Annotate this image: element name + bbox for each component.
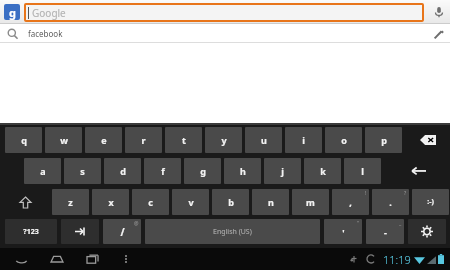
button[interactable]: Backspace bbox=[405, 125, 450, 155]
button[interactable]: p bbox=[365, 127, 402, 153]
button[interactable]: , bbox=[332, 189, 369, 215]
button[interactable]: Keyboard settings bbox=[408, 219, 446, 244]
staticText: English (US) bbox=[213, 227, 252, 237]
staticText: h bbox=[240, 165, 246, 177]
staticText: n bbox=[268, 196, 274, 208]
button[interactable]: English (US) bbox=[145, 219, 320, 244]
button[interactable]: q bbox=[5, 127, 42, 153]
staticText: g bbox=[9, 5, 16, 20]
staticText: g bbox=[200, 165, 206, 177]
button[interactable]: ?123 bbox=[5, 219, 57, 244]
staticText: f bbox=[161, 165, 165, 177]
button[interactable]: Tab bbox=[61, 219, 99, 244]
button[interactable]: Shift bbox=[5, 189, 45, 215]
button[interactable]: l bbox=[344, 158, 381, 184]
button[interactable]: i bbox=[285, 127, 322, 153]
button[interactable]: f bbox=[144, 158, 181, 184]
staticText: c bbox=[148, 196, 153, 208]
staticText: facebook bbox=[28, 28, 63, 39]
staticText: v bbox=[188, 196, 194, 208]
button[interactable]: . bbox=[372, 189, 409, 215]
staticText: t bbox=[182, 134, 186, 146]
staticText: , bbox=[349, 196, 352, 208]
button[interactable]: g bbox=[184, 158, 221, 184]
button[interactable]: n bbox=[252, 189, 289, 215]
staticText: . bbox=[389, 196, 392, 208]
staticText: p bbox=[381, 134, 387, 146]
staticText: i bbox=[302, 134, 305, 146]
button[interactable]: w bbox=[45, 127, 82, 153]
button[interactable]: v bbox=[172, 189, 209, 215]
button[interactable]: Google bbox=[24, 3, 424, 22]
staticText: ?123 bbox=[23, 227, 39, 237]
staticText: j bbox=[281, 165, 284, 177]
button[interactable]: Voice search bbox=[428, 1, 450, 23]
button[interactable]: j bbox=[264, 158, 301, 184]
staticText: ? bbox=[404, 190, 407, 197]
staticText: w bbox=[60, 134, 68, 146]
button[interactable]: Edit suggestion bbox=[429, 25, 447, 43]
staticText: q bbox=[21, 134, 27, 146]
button[interactable]: b bbox=[212, 189, 249, 215]
staticText: " bbox=[357, 220, 360, 227]
button[interactable]: :-) bbox=[412, 189, 449, 215]
staticText: s bbox=[80, 165, 85, 177]
staticText: / bbox=[120, 225, 125, 239]
staticText: u bbox=[261, 134, 267, 146]
button[interactable]: - bbox=[366, 219, 404, 244]
button[interactable]: ' bbox=[324, 219, 362, 244]
button[interactable]: Home bbox=[46, 248, 68, 270]
button[interactable]: facebook bbox=[0, 24, 450, 43]
staticText: ' bbox=[342, 226, 345, 238]
button[interactable]: m bbox=[292, 189, 329, 215]
button[interactable]: o bbox=[325, 127, 362, 153]
button[interactable]: t bbox=[165, 127, 202, 153]
staticText: :-) bbox=[427, 197, 434, 207]
button[interactable]: More options bbox=[116, 249, 136, 269]
staticText: 11:19 bbox=[383, 252, 411, 267]
button[interactable]: x bbox=[92, 189, 129, 215]
staticText: l bbox=[361, 165, 364, 177]
button[interactable]: h bbox=[224, 158, 261, 184]
staticText: k bbox=[320, 165, 326, 177]
staticText: r bbox=[141, 134, 146, 146]
button[interactable]: y bbox=[205, 127, 242, 153]
button[interactable]: u bbox=[245, 127, 282, 153]
staticText: z bbox=[68, 196, 73, 208]
staticText: Google bbox=[32, 6, 66, 20]
button[interactable]: z bbox=[52, 189, 89, 215]
button[interactable]: Enter bbox=[384, 155, 450, 186]
staticText: ! bbox=[365, 190, 367, 197]
staticText: e bbox=[101, 134, 107, 146]
button[interactable]: / bbox=[103, 219, 141, 244]
button[interactable]: d bbox=[104, 158, 141, 184]
staticText: y bbox=[221, 134, 227, 146]
staticText: _ bbox=[399, 220, 402, 227]
staticText: x bbox=[108, 196, 114, 208]
button[interactable]: e bbox=[85, 127, 122, 153]
button[interactable]: c bbox=[132, 189, 169, 215]
staticText: d bbox=[120, 165, 126, 177]
staticText: a bbox=[40, 165, 46, 177]
button[interactable]: k bbox=[304, 158, 341, 184]
button[interactable]: Google bbox=[4, 4, 20, 20]
staticText: - bbox=[384, 226, 387, 238]
staticText: b bbox=[228, 196, 234, 208]
button[interactable]: Back bbox=[10, 248, 32, 270]
staticText: m bbox=[306, 196, 315, 208]
staticText: o bbox=[341, 134, 347, 146]
button[interactable]: r bbox=[125, 127, 162, 153]
staticText: @ bbox=[134, 220, 139, 227]
button[interactable]: s bbox=[64, 158, 101, 184]
button[interactable]: Recent apps bbox=[82, 248, 104, 270]
button[interactable]: a bbox=[24, 158, 61, 184]
